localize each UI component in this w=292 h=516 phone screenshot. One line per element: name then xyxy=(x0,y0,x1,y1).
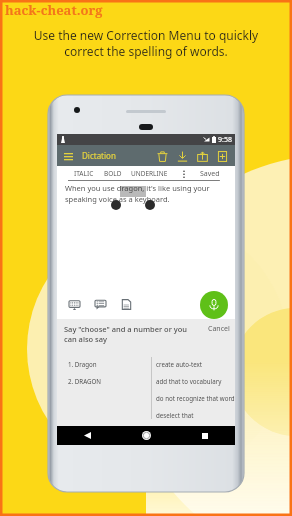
button[interactable]: UNDERLINE xyxy=(131,166,168,181)
staticText: BOLD xyxy=(104,169,122,178)
button[interactable]: Home xyxy=(135,426,157,445)
button[interactable]: New document xyxy=(214,148,230,164)
button[interactable]: Voice commands xyxy=(93,297,108,312)
button[interactable]: Delete xyxy=(154,148,170,164)
button[interactable]: Start dictation xyxy=(200,291,228,319)
staticText: Saved xyxy=(200,169,220,179)
staticText: hack-cheat.org xyxy=(5,1,103,19)
button[interactable]: BOLD xyxy=(104,166,122,181)
staticText: UNDERLINE xyxy=(131,169,168,178)
button[interactable]: 1. Dragon xyxy=(68,355,146,372)
button[interactable]: Download xyxy=(174,148,190,164)
staticText: Cancel xyxy=(208,324,230,334)
staticText: deselect that xyxy=(156,411,194,419)
staticText: add that to vocabulary xyxy=(156,377,222,385)
button[interactable]: Documents xyxy=(119,297,134,312)
button[interactable]: 2. DRAGON xyxy=(68,372,146,389)
staticText: ITALIC xyxy=(74,169,94,178)
button[interactable]: Open navigation menu xyxy=(61,149,75,163)
staticText: When you use dragon, it's like using you… xyxy=(65,183,227,204)
button[interactable]: Cancel xyxy=(208,324,230,334)
staticText: Dictation xyxy=(82,150,116,161)
button[interactable]: Back xyxy=(76,426,98,445)
staticText: 2. DRAGON xyxy=(68,377,102,385)
button[interactable]: create auto-text xyxy=(156,355,235,372)
button[interactable]: Keyboard xyxy=(67,297,82,312)
button[interactable]: Recents xyxy=(194,426,216,445)
button[interactable]: Share xyxy=(194,148,210,164)
staticText: Say "choose" and a number or you can als… xyxy=(64,324,188,344)
staticText: Use the new Correction Menu to quickly c… xyxy=(0,27,292,59)
staticText: create auto-text xyxy=(156,360,203,368)
button[interactable]: Saved xyxy=(200,166,220,181)
button[interactable]: More formatting options xyxy=(178,166,189,181)
staticText: do not recognize that word xyxy=(156,394,235,402)
staticText: 9:58 xyxy=(218,135,232,145)
button[interactable]: add that to vocabulary xyxy=(156,372,235,389)
staticText: 1. Dragon xyxy=(68,360,97,368)
button[interactable]: deselect that xyxy=(156,406,235,423)
button[interactable]: do not recognize that word xyxy=(156,389,235,406)
button[interactable]: ITALIC xyxy=(74,166,94,181)
